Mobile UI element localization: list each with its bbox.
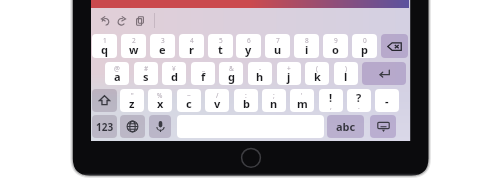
staticText: @ [114, 64, 120, 73]
button[interactable]: 2 [121, 34, 146, 58]
staticText: 3 [161, 36, 165, 45]
staticText: 8 [305, 36, 309, 45]
button[interactable]: . [347, 89, 371, 112]
button[interactable]: 9 [323, 34, 348, 58]
button[interactable]: 6 [236, 34, 261, 58]
staticText: n [270, 96, 278, 111]
button[interactable]: 5 [208, 34, 233, 58]
staticText: s [143, 69, 149, 84]
button[interactable]: ¥ [162, 62, 186, 85]
staticText: 7 [276, 36, 280, 45]
button[interactable]: 7 [265, 34, 290, 58]
button[interactable]: Clipboard [131, 12, 149, 30]
button[interactable]: 8 [294, 34, 319, 58]
button[interactable]: @ [105, 62, 129, 85]
staticText: + [287, 64, 291, 73]
staticText: v [214, 96, 221, 111]
staticText: ) [345, 64, 347, 73]
button[interactable]: ~ [177, 89, 201, 112]
staticText: : [245, 91, 247, 100]
staticText: l [344, 69, 348, 84]
button[interactable]: " [120, 89, 144, 112]
button[interactable]: + [277, 62, 301, 85]
staticText: a [114, 69, 121, 84]
staticText: d [171, 69, 178, 84]
staticText: abc [336, 119, 356, 134]
staticText: ~ [187, 91, 191, 100]
staticText: - [385, 93, 389, 108]
button[interactable]: Hide keyboard [370, 115, 396, 138]
button[interactable]: _ [191, 62, 215, 85]
button[interactable]: % [148, 89, 172, 112]
staticText: t [218, 42, 223, 57]
staticText: 9 [334, 36, 338, 45]
staticText: k [314, 69, 321, 84]
button[interactable]: Shift [92, 89, 117, 112]
staticText: 123 [96, 120, 114, 134]
staticText: p [361, 42, 368, 57]
staticText: 6 [247, 36, 251, 45]
button[interactable]: 1 [92, 34, 117, 58]
button[interactable]: ) [334, 62, 358, 85]
button[interactable]: 3 [150, 34, 175, 58]
button[interactable]: Change language [120, 115, 145, 138]
staticText: x [157, 96, 164, 111]
button[interactable]: # [134, 62, 158, 85]
button[interactable]: Redo [113, 12, 131, 30]
staticText: 5 [219, 36, 223, 45]
staticText: e [159, 42, 166, 57]
staticText: / [216, 91, 219, 100]
staticText: z [129, 96, 135, 111]
button[interactable]: & [219, 62, 243, 85]
button[interactable]: 0 [352, 34, 377, 58]
staticText: q [101, 42, 108, 57]
staticText: f [201, 69, 206, 84]
staticText: 2 [132, 36, 136, 45]
staticText: ! [329, 90, 333, 105]
staticText: ? [356, 90, 362, 105]
staticText: 0 [363, 36, 367, 45]
staticText: - [259, 64, 262, 73]
staticText: & [229, 64, 234, 73]
button[interactable]: ' [290, 89, 314, 112]
button[interactable]: Enter [362, 62, 406, 85]
button[interactable]: : [234, 89, 258, 112]
button[interactable]: 4 [179, 34, 204, 58]
staticText: " [131, 91, 134, 100]
staticText: j [287, 69, 291, 84]
staticText: g [228, 69, 235, 84]
staticText: h [256, 69, 264, 84]
button[interactable]: 123 [92, 115, 117, 138]
staticText: m [297, 96, 308, 111]
button[interactable]: ( [305, 62, 329, 85]
staticText: # [144, 64, 149, 73]
staticText: ; [273, 91, 275, 100]
button[interactable]: Undo [96, 12, 114, 30]
staticText: , [330, 102, 332, 111]
staticText: 1 [103, 36, 107, 45]
button[interactable]: - [248, 62, 272, 85]
staticText: _ [202, 64, 205, 73]
staticText: u [274, 42, 282, 57]
button[interactable]: abc [327, 115, 364, 138]
staticText: . [358, 102, 360, 111]
staticText: % [157, 91, 163, 100]
staticText: b [243, 96, 250, 111]
staticText: i [305, 42, 309, 57]
staticText: 4 [190, 36, 194, 45]
staticText: r [189, 42, 194, 57]
staticText: ¥ [172, 64, 176, 73]
staticText: o [332, 42, 339, 57]
button[interactable]: , [319, 89, 343, 112]
staticText: y [245, 42, 252, 57]
button[interactable]: - [375, 89, 399, 112]
button[interactable]: / [205, 89, 229, 112]
staticText: ' [301, 91, 303, 100]
staticText: ( [316, 64, 318, 73]
button[interactable]: Backspace [381, 34, 408, 58]
button[interactable]: Voice input [149, 115, 171, 138]
staticText: w [129, 42, 139, 57]
staticText: c [186, 96, 192, 111]
button[interactable]: ; [262, 89, 286, 112]
